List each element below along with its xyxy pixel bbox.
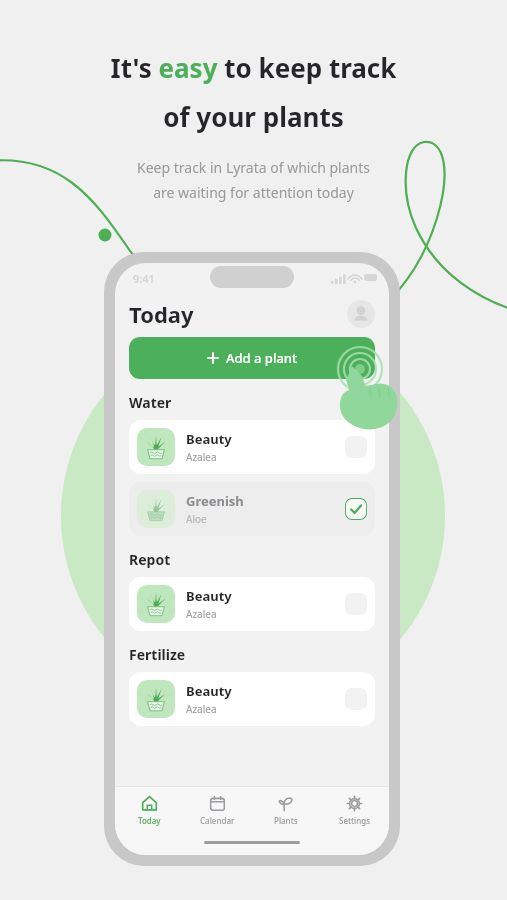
staticText: Add a plant [226, 349, 297, 367]
staticText: It's easy to keep track [0, 50, 507, 85]
staticText: Today [138, 815, 161, 826]
button[interactable]: Beauty [129, 420, 375, 474]
staticText: Settings [339, 815, 371, 826]
button[interactable]: Greenish [129, 482, 375, 536]
staticText: Calendar [200, 815, 235, 826]
button[interactable]: Completed [345, 498, 367, 520]
button[interactable]: Today [115, 787, 183, 833]
staticText: Azalea [186, 450, 217, 464]
staticText: Repot [129, 550, 171, 569]
button[interactable]: Profile [347, 300, 375, 328]
staticText: Plants [274, 815, 298, 826]
staticText: Azalea [186, 607, 217, 621]
staticText: Azalea [186, 702, 217, 716]
staticText: Fertilize [129, 645, 186, 664]
staticText: of your plants [0, 99, 507, 134]
staticText: Beauty [186, 682, 232, 700]
button[interactable]: Mark as done [345, 688, 367, 710]
staticText: Water [129, 393, 172, 412]
staticText: Greenish [186, 492, 244, 510]
button[interactable]: Beauty [129, 577, 375, 631]
button[interactable]: Plants [251, 787, 320, 833]
staticText: Beauty [186, 430, 232, 448]
button[interactable]: Mark as done [345, 436, 367, 458]
button[interactable]: Settings [320, 787, 389, 833]
button[interactable]: Mark as done [345, 593, 367, 615]
staticText: Aloe [186, 512, 207, 526]
staticText: 9:41 [133, 271, 155, 286]
button[interactable]: Calendar [183, 787, 251, 833]
staticText: Keep track in Lyrata of which plants [0, 158, 507, 177]
staticText: Today [129, 299, 194, 329]
button[interactable]: Add a plant [129, 337, 375, 379]
staticText: Beauty [186, 587, 232, 605]
staticText: are waiting for attention today [0, 183, 507, 202]
button[interactable]: Beauty [129, 672, 375, 726]
